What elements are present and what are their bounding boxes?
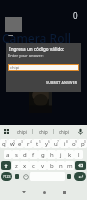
staticText: r — [27, 140, 30, 148]
button[interactable]: v — [38, 161, 47, 170]
staticText: 0 — [84, 140, 86, 144]
button[interactable]: h — [47, 150, 56, 159]
button[interactable]: m — [65, 161, 74, 170]
button[interactable]: Backspace — [75, 161, 86, 170]
staticText: l — [78, 151, 80, 159]
staticText: p — [81, 140, 85, 148]
staticText: chipi — [17, 129, 27, 135]
button[interactable]: chipi — [54, 125, 74, 138]
button[interactable]: Keyboard menu — [0, 125, 12, 138]
staticText: Enter your answer: — [8, 53, 44, 58]
button[interactable]: u — [51, 139, 60, 148]
staticText: b — [50, 162, 54, 170]
staticText: 7 — [57, 140, 59, 144]
staticText: chipi — [10, 65, 20, 71]
staticText: u — [54, 140, 58, 148]
staticText: e — [18, 140, 22, 148]
button[interactable]: a — [4, 150, 12, 159]
button[interactable]: d — [20, 150, 29, 159]
staticText: 9 — [75, 140, 77, 144]
button[interactable]: c — [29, 161, 38, 170]
button[interactable]: i — [60, 139, 69, 148]
button[interactable]: SUBMIT ANSWER — [45, 79, 79, 86]
button[interactable]: Symbols — [1, 172, 12, 181]
button[interactable]: e — [16, 139, 24, 148]
button[interactable]: Enter — [74, 172, 86, 181]
staticText: i — [64, 140, 66, 148]
staticText: w — [10, 140, 15, 148]
staticText: ?123 — [3, 174, 11, 179]
button[interactable]: Recent apps — [54, 184, 74, 200]
button[interactable]: x — [20, 161, 29, 170]
button[interactable]: r — [24, 139, 33, 148]
button[interactable]: Hide keyboard — [14, 184, 34, 200]
staticText: v — [41, 162, 45, 170]
button[interactable]: Voice input — [74, 125, 87, 138]
button[interactable]: l — [74, 150, 83, 159]
staticText: 4 — [30, 140, 32, 144]
button[interactable]: Period — [67, 174, 71, 179]
staticText: x — [23, 162, 27, 170]
button[interactable]: t — [33, 139, 42, 148]
button[interactable]: p — [78, 139, 87, 148]
staticText: 3 — [21, 140, 23, 144]
staticText: j — [60, 151, 62, 159]
button[interactable]: Selected count — [69, 9, 81, 21]
button[interactable]: b — [47, 161, 56, 170]
staticText: t — [36, 140, 39, 148]
staticText: f — [32, 151, 35, 159]
staticText: y — [45, 140, 49, 148]
staticText: k — [68, 151, 72, 159]
staticText: o — [72, 140, 76, 148]
staticText: z — [15, 162, 18, 170]
button[interactable]: q — [0, 139, 8, 148]
staticText: SUBMIT ANSWER — [46, 80, 78, 85]
button[interactable]: z — [12, 161, 20, 170]
staticText: d — [23, 151, 27, 159]
button[interactable]: Emoji — [23, 174, 29, 180]
button[interactable]: chipi — [12, 125, 32, 138]
button[interactable]: g — [38, 150, 47, 159]
staticText: c — [32, 162, 35, 170]
staticText: s — [15, 151, 18, 159]
button[interactable]: j — [56, 150, 65, 159]
button[interactable]: k — [65, 150, 74, 159]
button[interactable]: chipi — [8, 64, 79, 71]
button[interactable]: s — [12, 150, 20, 159]
staticText: Ingresa un código válido: — [9, 46, 65, 52]
staticText: n — [59, 162, 63, 170]
button[interactable]: Comma — [15, 174, 19, 179]
staticText: q — [2, 140, 6, 148]
staticText: 8 — [66, 140, 68, 144]
button[interactable]: Home — [34, 184, 54, 200]
staticText: 6 — [48, 140, 50, 144]
staticText: 2 — [13, 140, 15, 144]
staticText: 5 — [39, 140, 41, 144]
button[interactable]: Shift — [1, 161, 11, 170]
staticText: g — [41, 151, 45, 159]
button[interactable]: y — [42, 139, 51, 148]
button[interactable]: f — [29, 150, 38, 159]
button[interactable]: n — [56, 161, 65, 170]
staticText: m — [67, 162, 73, 170]
staticText: Camera Roll — [2, 30, 71, 46]
staticText: 0 — [73, 10, 78, 21]
button[interactable]: w — [8, 139, 16, 148]
staticText: chipi — [59, 129, 69, 135]
staticText: 1 — [5, 140, 7, 144]
staticText: h — [50, 151, 54, 159]
staticText: a — [6, 151, 10, 159]
button[interactable]: chip — [33, 125, 53, 138]
staticText: chip — [39, 129, 48, 135]
button[interactable]: Camera Roll — [2, 30, 71, 46]
button[interactable]: o — [69, 139, 78, 148]
